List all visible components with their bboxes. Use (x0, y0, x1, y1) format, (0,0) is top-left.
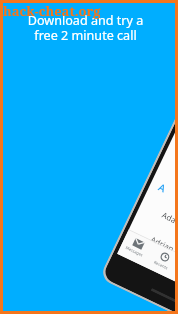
staticText: Messages (125, 245, 144, 258)
button[interactable]: Contacts (170, 256, 178, 291)
other: Recents (159, 251, 171, 263)
other: Messages (132, 238, 145, 250)
staticText: Adrian Cole (149, 233, 178, 262)
staticText: Adam Smith (160, 209, 178, 239)
staticText: A (156, 180, 169, 195)
staticText: Download and try a free 2 minute call (0, 12, 171, 44)
staticText: Recents (153, 260, 169, 271)
button[interactable]: Recents (144, 243, 178, 279)
button[interactable]: Messages (117, 230, 155, 266)
staticText: hack-cheat.org (3, 2, 101, 20)
